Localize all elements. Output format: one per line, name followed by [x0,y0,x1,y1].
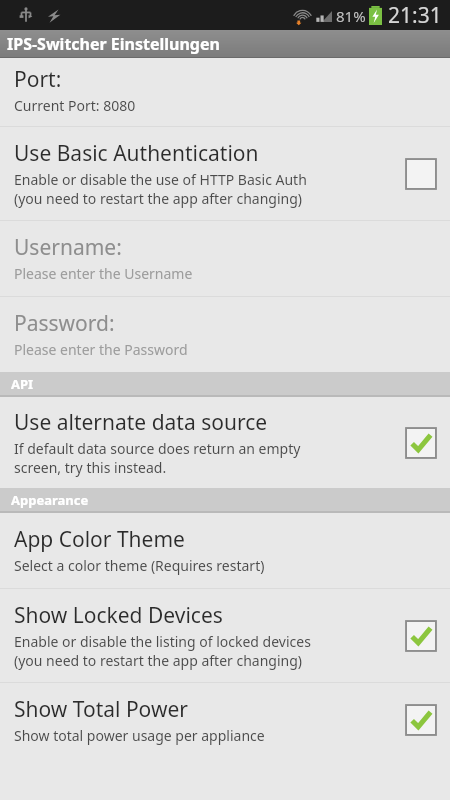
button[interactable]: Use Basic Authentication [400,153,442,195]
staticText: Appearance [11,491,89,509]
staticText: (you need to restart the app after chang… [14,651,303,670]
staticText: Use alternate data source (recommended) [14,408,400,437]
staticText: Please enter the Password [14,340,188,359]
button[interactable]: Use alternate data source (recommended) [400,422,442,464]
button[interactable]: Password: [0,297,450,372]
button[interactable]: Username: [0,221,450,296]
staticText: (you need to restart the app after chang… [14,189,303,208]
button[interactable]: App Color Theme [0,513,450,588]
staticText: App Color Theme [14,525,185,554]
button[interactable]: Port: [0,58,450,126]
button[interactable]: Use Basic Authentication [0,127,450,220]
button[interactable]: Show Total Power [400,699,442,741]
staticText: Show Locked Devices [14,601,223,630]
staticText: 81% [336,6,366,26]
staticText: Enable or disable the listing of locked … [14,632,311,651]
button[interactable]: Show Total Power [0,683,450,758]
staticText: Current Port: 8080 [14,96,136,115]
staticText: API [11,375,34,393]
staticText: screen, try this instead. [14,458,167,477]
staticText: IPS-Switcher Einstellungen [7,33,220,55]
staticText: Show total power usage per appliance [14,726,265,745]
staticText: Select a color theme (Requires restart) [14,556,265,575]
staticText: Port: [14,65,62,94]
staticText: Username: [14,233,122,262]
staticText: Enable or disable the use of HTTP Basic … [14,170,307,189]
button[interactable]: Show Locked Devices [400,615,442,657]
staticText: Show Total Power [14,695,188,724]
staticText: Please enter the Username [14,264,193,283]
staticText: 21:31 [388,1,442,30]
staticText: If default data source does return an em… [14,439,301,458]
staticText: Password: [14,309,115,338]
button[interactable]: Show Locked Devices [0,589,450,682]
button[interactable]: Use alternate data source (recommended) [0,397,450,488]
staticText: Use Basic Authentication [14,139,259,168]
